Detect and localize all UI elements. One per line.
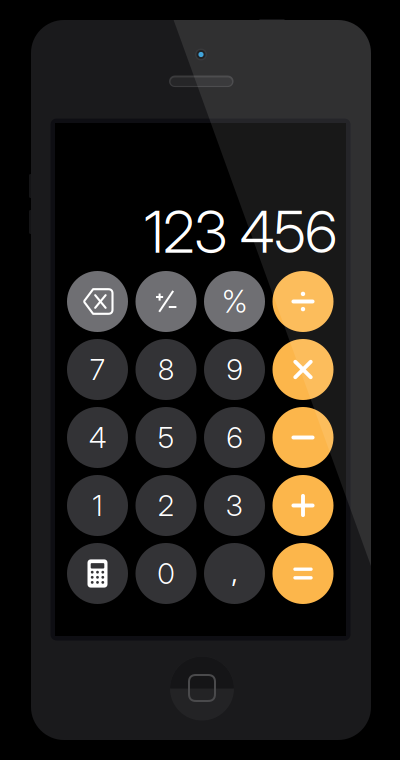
button[interactable]: 0 (0, 0, 400, 760)
staticText: 1 (92, 488, 102, 523)
button[interactable]: 2 (0, 0, 400, 760)
button[interactable]: Subtract (0, 0, 400, 760)
staticText: 7 (90, 352, 105, 387)
button[interactable]: 7 (0, 0, 400, 760)
staticText: 8 (158, 352, 174, 387)
staticText: 5 (158, 420, 174, 455)
button[interactable]: Divide (0, 0, 400, 760)
button[interactable]: Add (0, 0, 400, 760)
staticText: 3 (226, 488, 243, 523)
button[interactable]: 8 (0, 0, 400, 760)
button[interactable]: 3 (0, 0, 400, 760)
staticText: 9 (226, 352, 242, 387)
button[interactable]: Toggle sign (0, 0, 400, 760)
button[interactable]: 9 (0, 0, 400, 760)
staticText: % (222, 283, 247, 320)
staticText: 6 (226, 420, 242, 455)
button[interactable]: 6 (0, 0, 400, 760)
button[interactable]: 1 (0, 0, 400, 760)
staticText: , (231, 554, 237, 589)
button[interactable]: Delete (0, 0, 400, 760)
staticText: 123 456 (144, 197, 337, 267)
staticText: 0 (157, 556, 174, 591)
staticText: 4 (89, 420, 106, 455)
button[interactable]: 5 (0, 0, 400, 760)
staticText: 2 (158, 488, 174, 523)
button[interactable]: Decimal separator (0, 0, 400, 760)
button[interactable]: 4 (0, 0, 400, 760)
button[interactable]: % (0, 0, 400, 760)
button[interactable]: Equals (0, 0, 400, 760)
button[interactable]: Multiply (0, 0, 400, 760)
button[interactable]: Calculator (0, 0, 400, 760)
